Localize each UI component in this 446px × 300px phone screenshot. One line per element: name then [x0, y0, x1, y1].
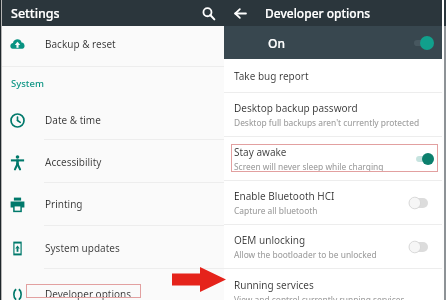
staticText: Accessibility	[45, 155, 102, 169]
staticText: System	[11, 77, 44, 90]
staticText: Enable Bluetooth HCI	[234, 189, 335, 203]
staticText: Take bug report	[234, 69, 309, 83]
staticText: Desktop full backups aren't currently pr…	[234, 117, 420, 128]
staticText: System updates	[45, 241, 120, 255]
button[interactable]: Backup & reset	[0, 24, 224, 64]
staticText: Allow the bootloader to be unlocked	[234, 249, 377, 260]
staticText: Date & time	[45, 113, 101, 127]
button[interactable]: Back	[228, 1, 252, 25]
button[interactable]: Take bug report	[224, 59, 442, 92]
staticText: Backup & reset	[45, 37, 116, 51]
button[interactable]: Stay awake	[224, 137, 442, 180]
button[interactable]: OEM unlocking	[224, 225, 442, 268]
staticText: Printing	[45, 197, 83, 211]
staticText: Developer options	[265, 5, 371, 21]
button[interactable]: Running services	[234, 278, 442, 300]
button[interactable]: Date & time	[0, 99, 224, 141]
staticText: Screen will never sleep while charging	[234, 161, 384, 172]
staticText: Capture all bluetooth	[234, 205, 318, 216]
staticText: Developer options	[45, 287, 132, 300]
staticText: Settings	[11, 5, 60, 22]
staticText: Stay awake	[234, 145, 287, 159]
button[interactable]: Printing	[0, 183, 224, 225]
staticText: View and control currently running servi…	[234, 294, 405, 300]
button[interactable]: Search	[195, 0, 221, 26]
staticText: OEM unlocking	[234, 233, 306, 247]
staticText: Desktop backup password	[234, 101, 358, 115]
button[interactable]: System updates	[0, 227, 224, 269]
button[interactable]: Desktop backup password	[224, 93, 442, 136]
button[interactable]: On	[224, 26, 442, 59]
button[interactable]: Developer options	[0, 278, 224, 300]
staticText: On	[268, 35, 285, 51]
staticText: Running services	[234, 278, 314, 292]
button[interactable]: Enable Bluetooth HCI	[224, 181, 442, 224]
button[interactable]: Accessibility	[0, 141, 224, 183]
